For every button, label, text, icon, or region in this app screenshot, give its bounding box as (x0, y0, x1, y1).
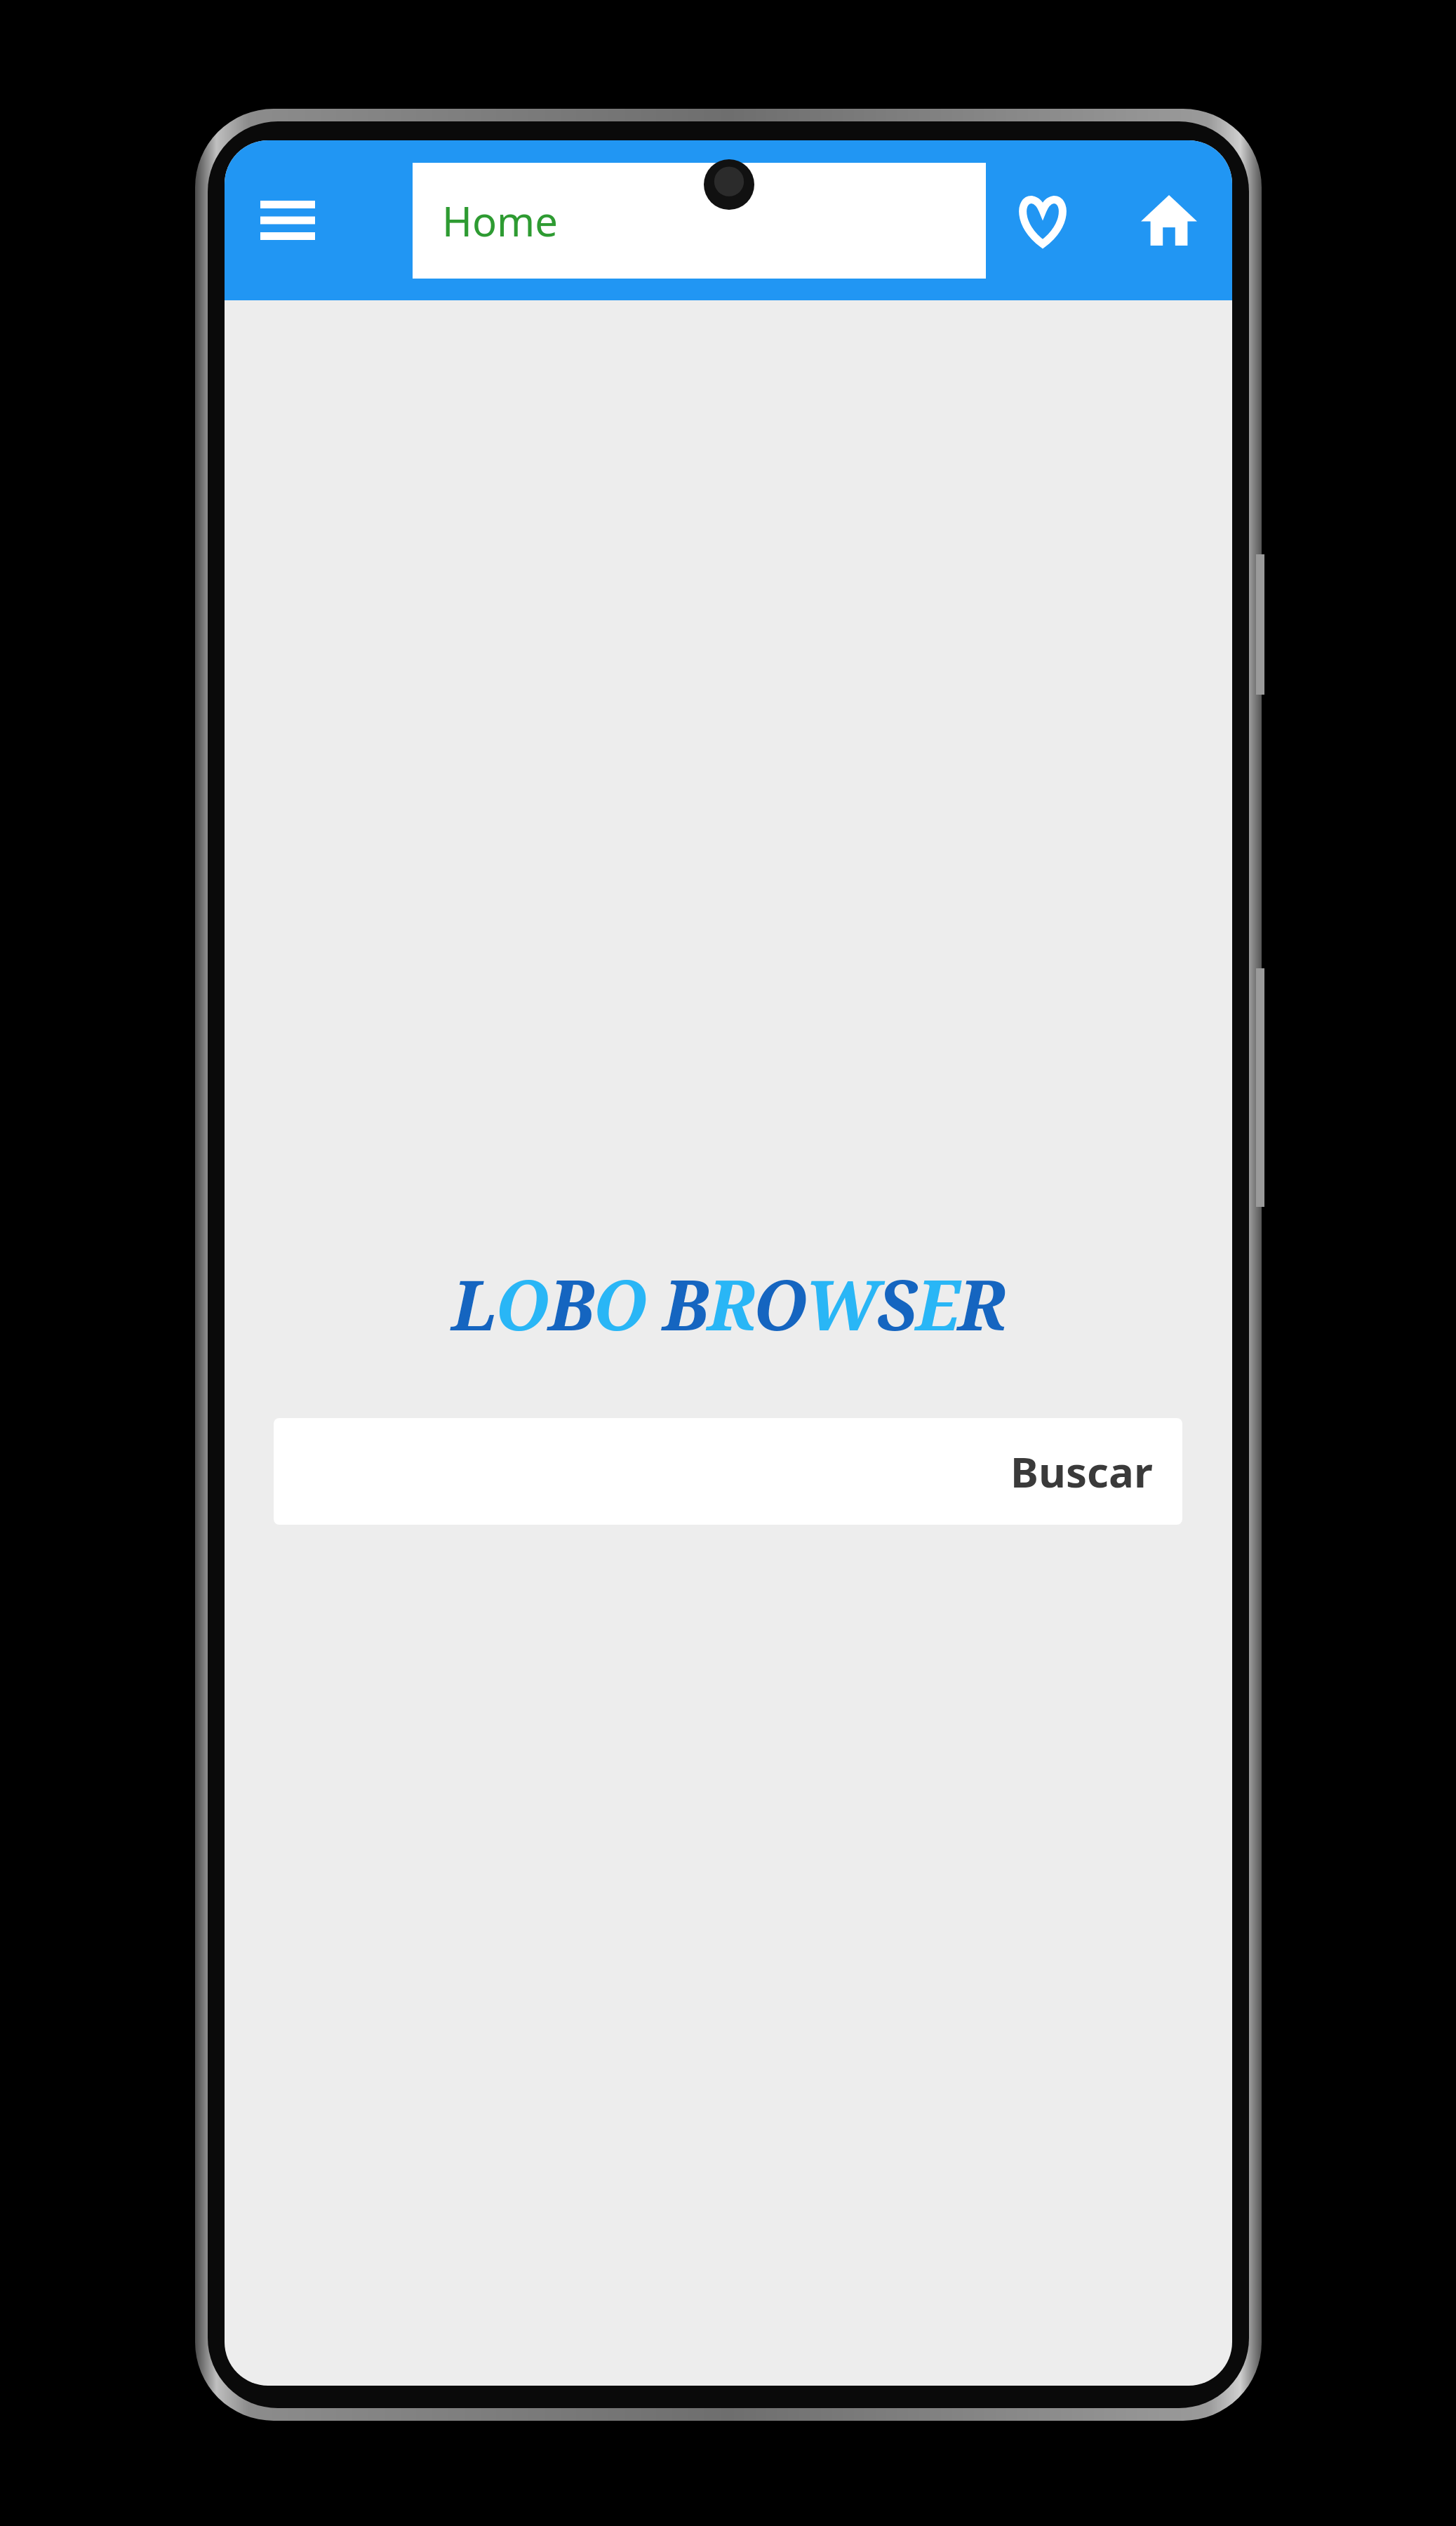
button[interactable]: Buscar (274, 1418, 1182, 1525)
staticText: LOBO BROWSER (225, 1257, 1232, 1350)
button[interactable]: Menu (241, 174, 334, 267)
button[interactable]: Home (1123, 174, 1215, 267)
button[interactable]: Favorites (996, 174, 1089, 267)
staticText: Home (442, 193, 559, 248)
staticText: Buscar (1010, 1443, 1153, 1500)
button[interactable]: Home (413, 163, 986, 279)
